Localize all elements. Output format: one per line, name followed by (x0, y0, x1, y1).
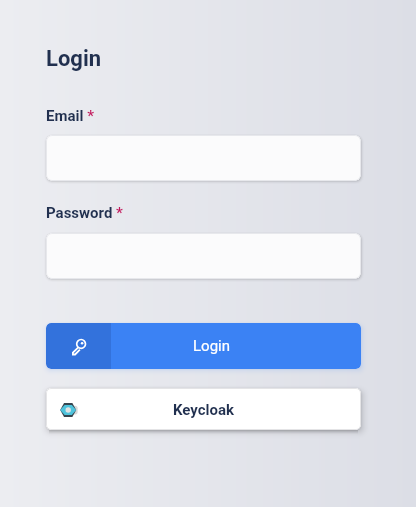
button[interactable] (46, 233, 361, 279)
staticText: Email * (46, 107, 94, 125)
staticText: Login (46, 46, 102, 72)
staticText: Login (193, 337, 230, 355)
button[interactable] (46, 135, 361, 181)
staticText: Password * (46, 204, 123, 222)
staticText: Keycloak (173, 401, 235, 419)
button[interactable]: Keycloak (46, 388, 361, 430)
button[interactable]: Login (46, 323, 361, 369)
